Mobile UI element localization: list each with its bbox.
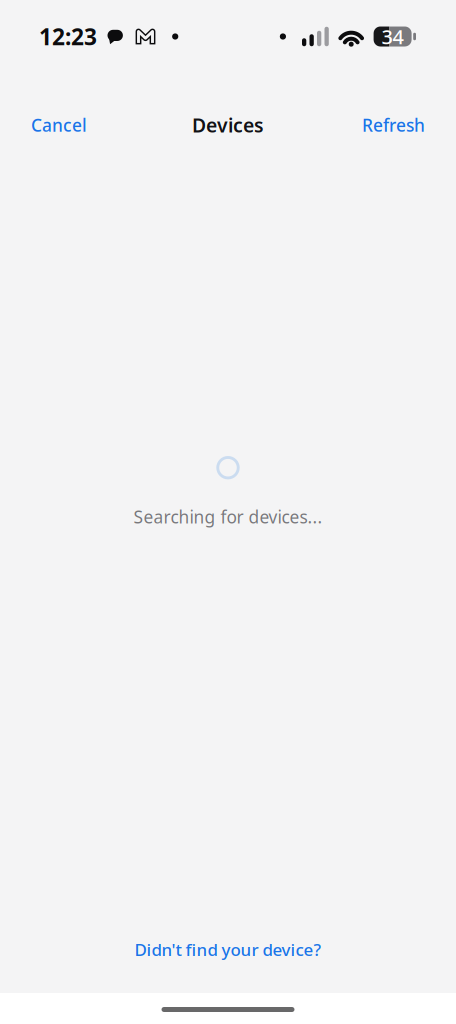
staticText: Refresh [362,113,425,137]
staticText: Didn't find your device? [134,938,321,961]
button[interactable]: Cancel [17,104,101,146]
staticText: 12:23 [39,21,97,52]
staticText: Devices [192,112,264,138]
staticText: Cancel [31,113,87,137]
button[interactable]: Refresh [348,104,439,146]
button[interactable]: Didn't find your device? [114,927,341,972]
staticText: Searching for devices... [133,505,322,528]
staticText: 34 [382,23,404,50]
